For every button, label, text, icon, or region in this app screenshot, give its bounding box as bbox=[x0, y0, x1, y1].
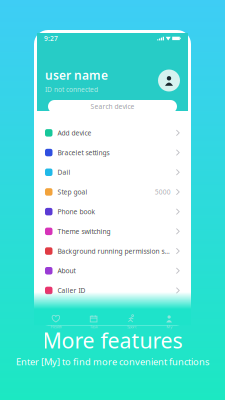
button[interactable]: Background running permission setting bbox=[37, 241, 188, 261]
button[interactable]: Search device bbox=[48, 100, 177, 113]
button[interactable]: Bracelet settings bbox=[37, 143, 188, 162]
staticText: 9:27 bbox=[44, 34, 58, 43]
staticText: Search device bbox=[90, 102, 134, 111]
button[interactable]: Caller ID bbox=[37, 281, 188, 300]
button[interactable]: Health bbox=[37, 311, 75, 333]
staticText: Enter [My] to find more convenient funct… bbox=[16, 355, 209, 368]
staticText: Dail bbox=[57, 168, 70, 177]
staticText: About bbox=[57, 266, 75, 275]
staticText: Add device bbox=[57, 128, 91, 137]
staticText: Phone book bbox=[57, 207, 95, 216]
staticText: My bbox=[166, 324, 172, 329]
button[interactable]: Profile bbox=[158, 69, 180, 91]
staticText: Step goal bbox=[57, 187, 87, 196]
button[interactable]: Phone book bbox=[37, 202, 188, 221]
button[interactable]: Add device bbox=[37, 123, 188, 143]
staticText: Health bbox=[50, 324, 61, 329]
button[interactable]: Theme switching bbox=[37, 221, 188, 241]
staticText: Task bbox=[90, 324, 98, 329]
staticText: Bracelet settings bbox=[57, 148, 109, 157]
button[interactable]: My bbox=[150, 311, 188, 333]
staticText: Sport bbox=[127, 324, 136, 329]
staticText: Background running permission setting bbox=[57, 247, 173, 255]
button[interactable]: Step goal bbox=[37, 182, 188, 202]
staticText: user name bbox=[45, 67, 108, 83]
staticText: Caller ID bbox=[57, 286, 85, 295]
staticText: 5000 bbox=[155, 187, 171, 196]
staticText: ID not connected bbox=[45, 85, 98, 94]
staticText: Theme switching bbox=[57, 227, 110, 236]
staticText: More features bbox=[42, 326, 182, 354]
button[interactable]: Sport bbox=[112, 311, 150, 333]
button[interactable]: Dail bbox=[37, 162, 188, 182]
button[interactable]: Task bbox=[75, 311, 113, 333]
button[interactable]: About bbox=[37, 261, 188, 281]
